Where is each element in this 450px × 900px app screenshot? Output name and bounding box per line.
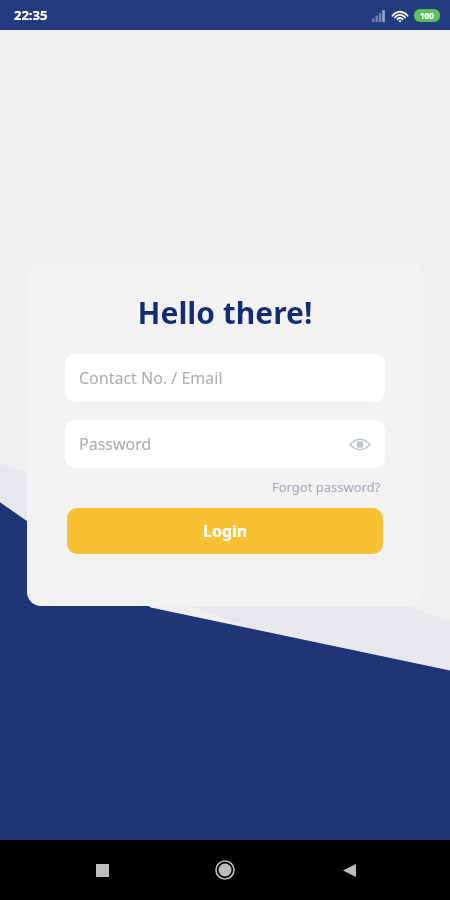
button[interactable]: Forgot password? [272,476,381,498]
staticText: Contact No. / Email [79,367,223,389]
staticText: Hello there! [27,292,423,333]
staticText: Login [203,520,248,542]
button[interactable]: Show password [345,429,375,459]
staticText: 100 [420,10,434,21]
button[interactable]: Recent apps [80,848,124,892]
button[interactable]: Home [203,848,247,892]
button[interactable]: Password [65,420,385,468]
staticText: 22:35 [14,6,48,24]
staticText: Forgot password? [272,478,381,496]
staticText: Password [79,433,152,455]
button[interactable]: Login [67,508,383,554]
button[interactable]: Contact No. / Email [65,354,385,402]
button[interactable]: Back [327,848,371,892]
